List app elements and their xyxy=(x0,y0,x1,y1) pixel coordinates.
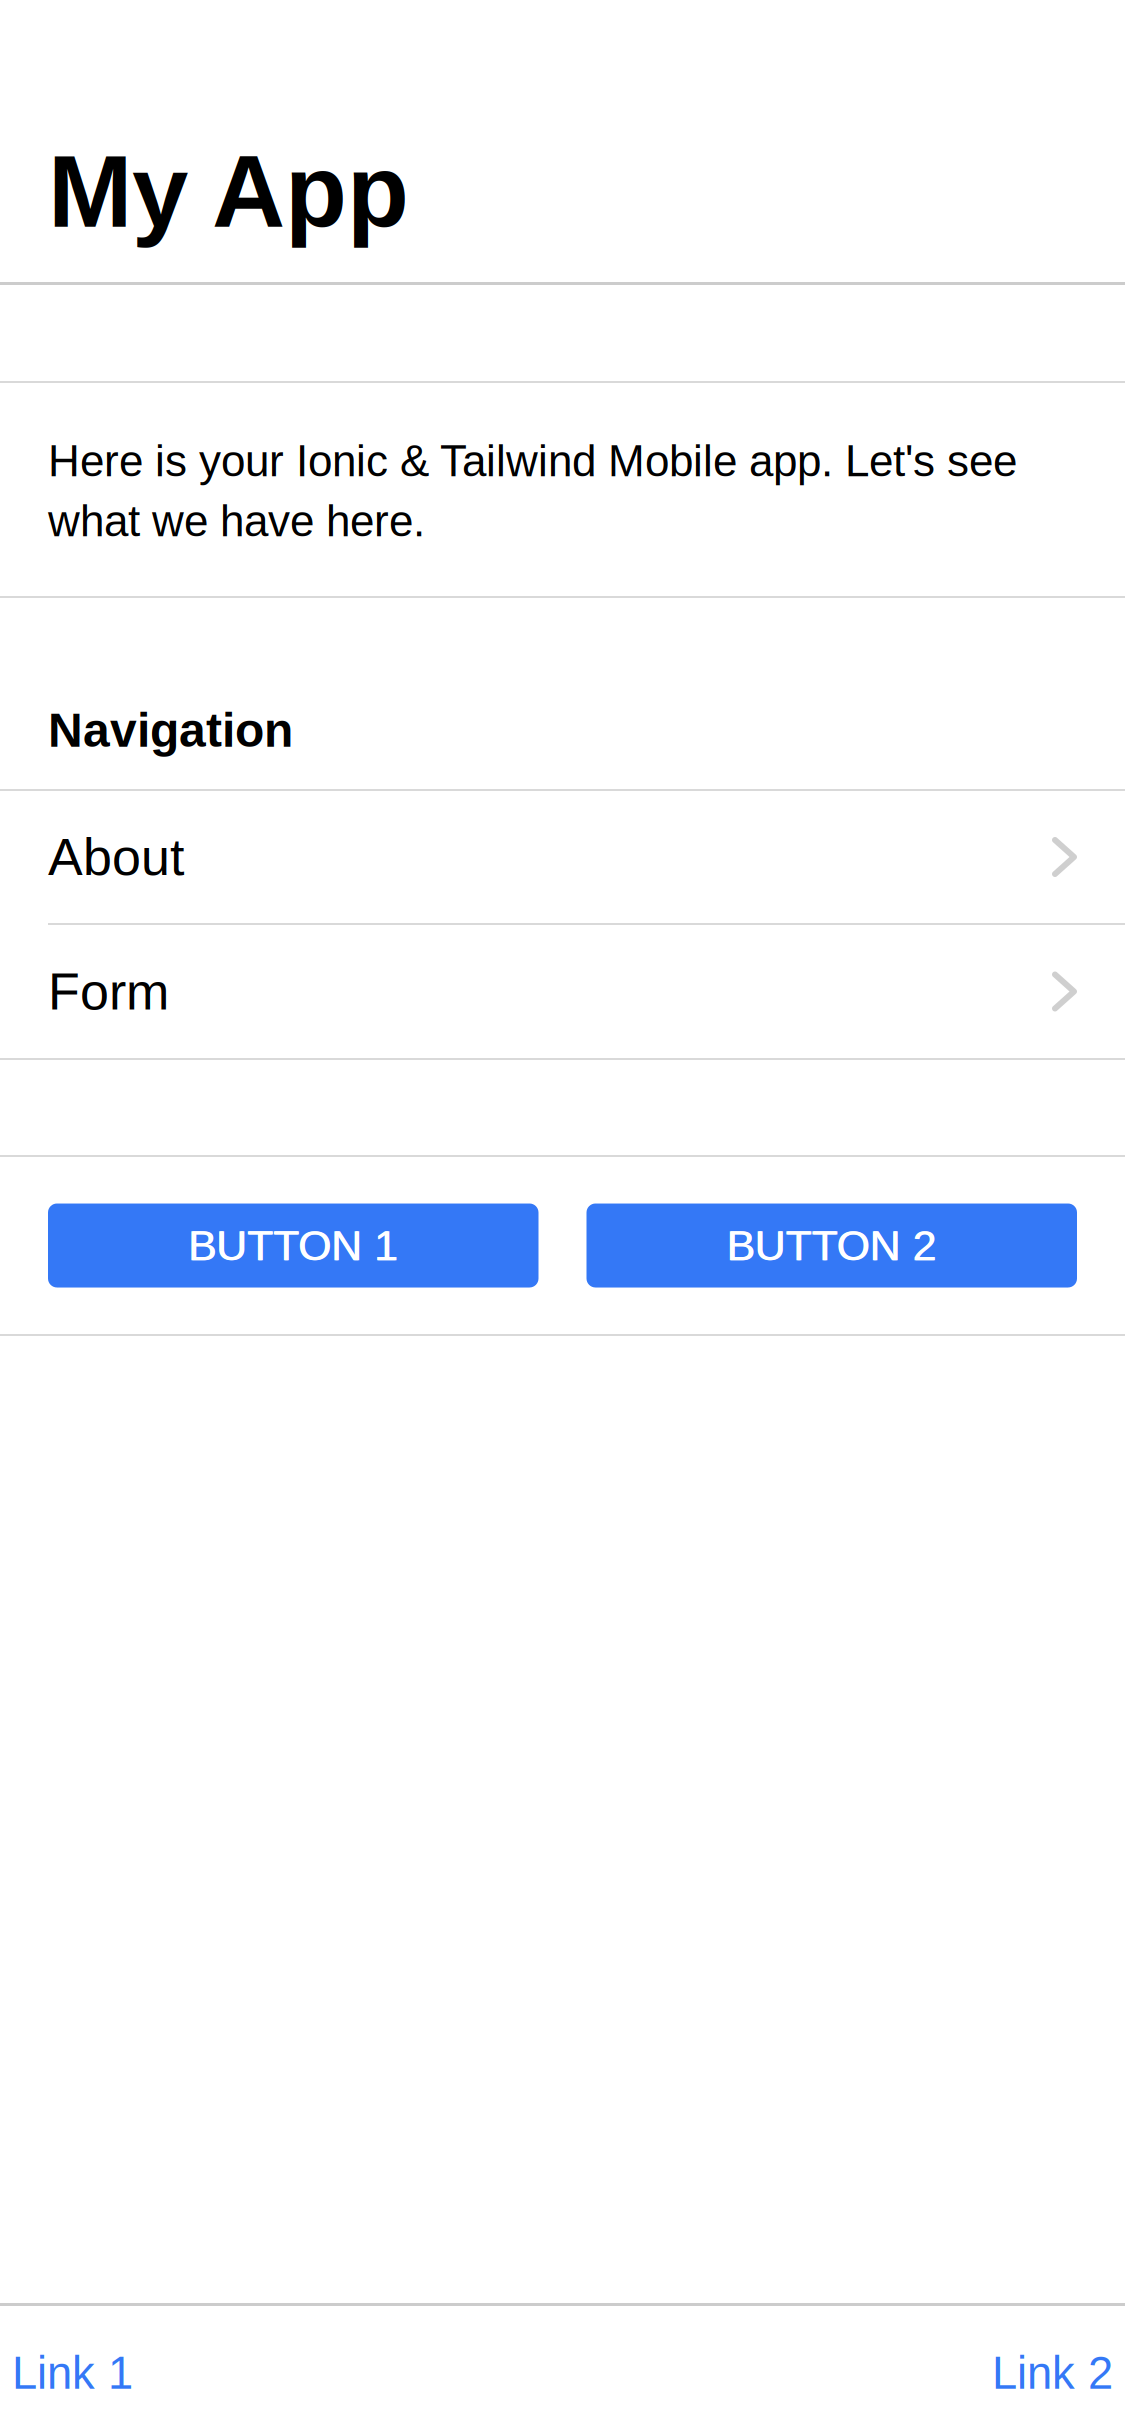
button[interactable]: BUTTON 2 xyxy=(586,1203,1077,1287)
staticText: BUTTON 1 xyxy=(189,1222,399,1269)
staticText: Here is your Ionic & Tailwind Mobile app… xyxy=(48,436,1017,546)
staticText: Link 2 xyxy=(992,2348,1113,2398)
staticText: My App xyxy=(48,135,409,248)
button[interactable]: Link 1 xyxy=(12,2348,133,2398)
button[interactable]: About xyxy=(0,791,1125,923)
staticText: BUTTON 1 xyxy=(188,1222,398,1269)
staticText: BUTTON 2 xyxy=(727,1222,937,1269)
staticText: Navigation xyxy=(48,703,293,757)
staticText: BUTTON 2 xyxy=(726,1222,936,1269)
button[interactable]: Form xyxy=(0,925,1125,1058)
button[interactable]: Link 2 xyxy=(992,2348,1113,2398)
staticText: About xyxy=(48,828,184,886)
button[interactable]: BUTTON 1 xyxy=(48,1203,538,1287)
staticText: Link 1 xyxy=(12,2348,133,2398)
staticText: Form xyxy=(48,962,169,1021)
